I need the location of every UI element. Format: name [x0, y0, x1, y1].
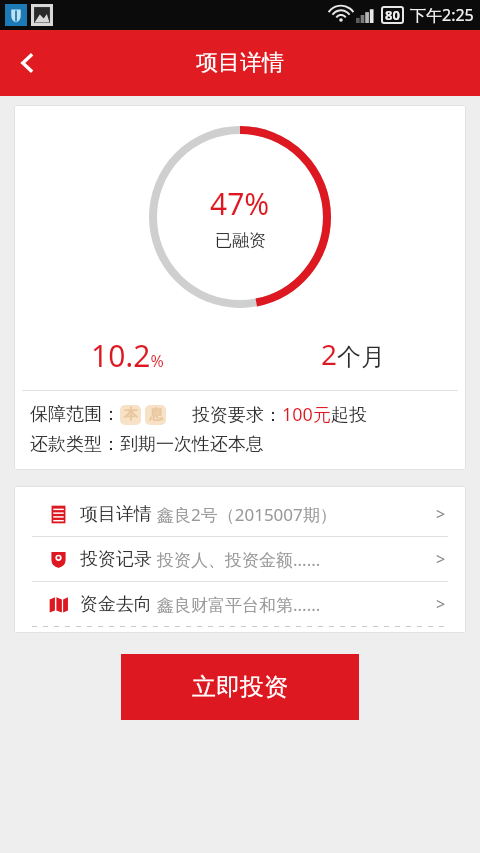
staticText: 立即投资: [192, 672, 288, 702]
staticText: 10.2%: [91, 335, 164, 376]
staticText: 下午2:25: [410, 4, 474, 26]
staticText: >: [436, 548, 446, 570]
staticText: 项目详情: [80, 503, 152, 526]
staticText: >: [436, 593, 446, 615]
staticText: 还款类型：到期一次性还本息: [30, 433, 264, 456]
button[interactable]: 资金去向: [14, 582, 466, 626]
staticText: 息: [149, 406, 163, 424]
staticText: 保障范围：: [30, 403, 120, 426]
staticText: >: [436, 503, 446, 525]
staticText: 鑫良财富平台和第......: [157, 593, 321, 616]
button[interactable]: 项目详情: [14, 492, 466, 536]
staticText: 2个月: [321, 335, 386, 373]
staticText: 47%: [210, 183, 270, 224]
button[interactable]: Back: [0, 35, 56, 91]
staticText: 项目详情: [196, 49, 284, 77]
staticText: 资金去向: [80, 593, 152, 616]
staticText: 投资记录: [80, 548, 152, 571]
button[interactable]: 投资记录: [14, 537, 466, 581]
staticText: 已融资: [215, 230, 266, 251]
staticText: 本: [124, 406, 138, 424]
staticText: 投资人、投资金额......: [157, 548, 321, 571]
staticText: 投资要求：100元起投: [192, 402, 367, 427]
staticText: 鑫良2号（2015007期）: [157, 503, 337, 526]
button[interactable]: 立即投资: [121, 654, 359, 720]
staticText: 80: [385, 6, 400, 24]
